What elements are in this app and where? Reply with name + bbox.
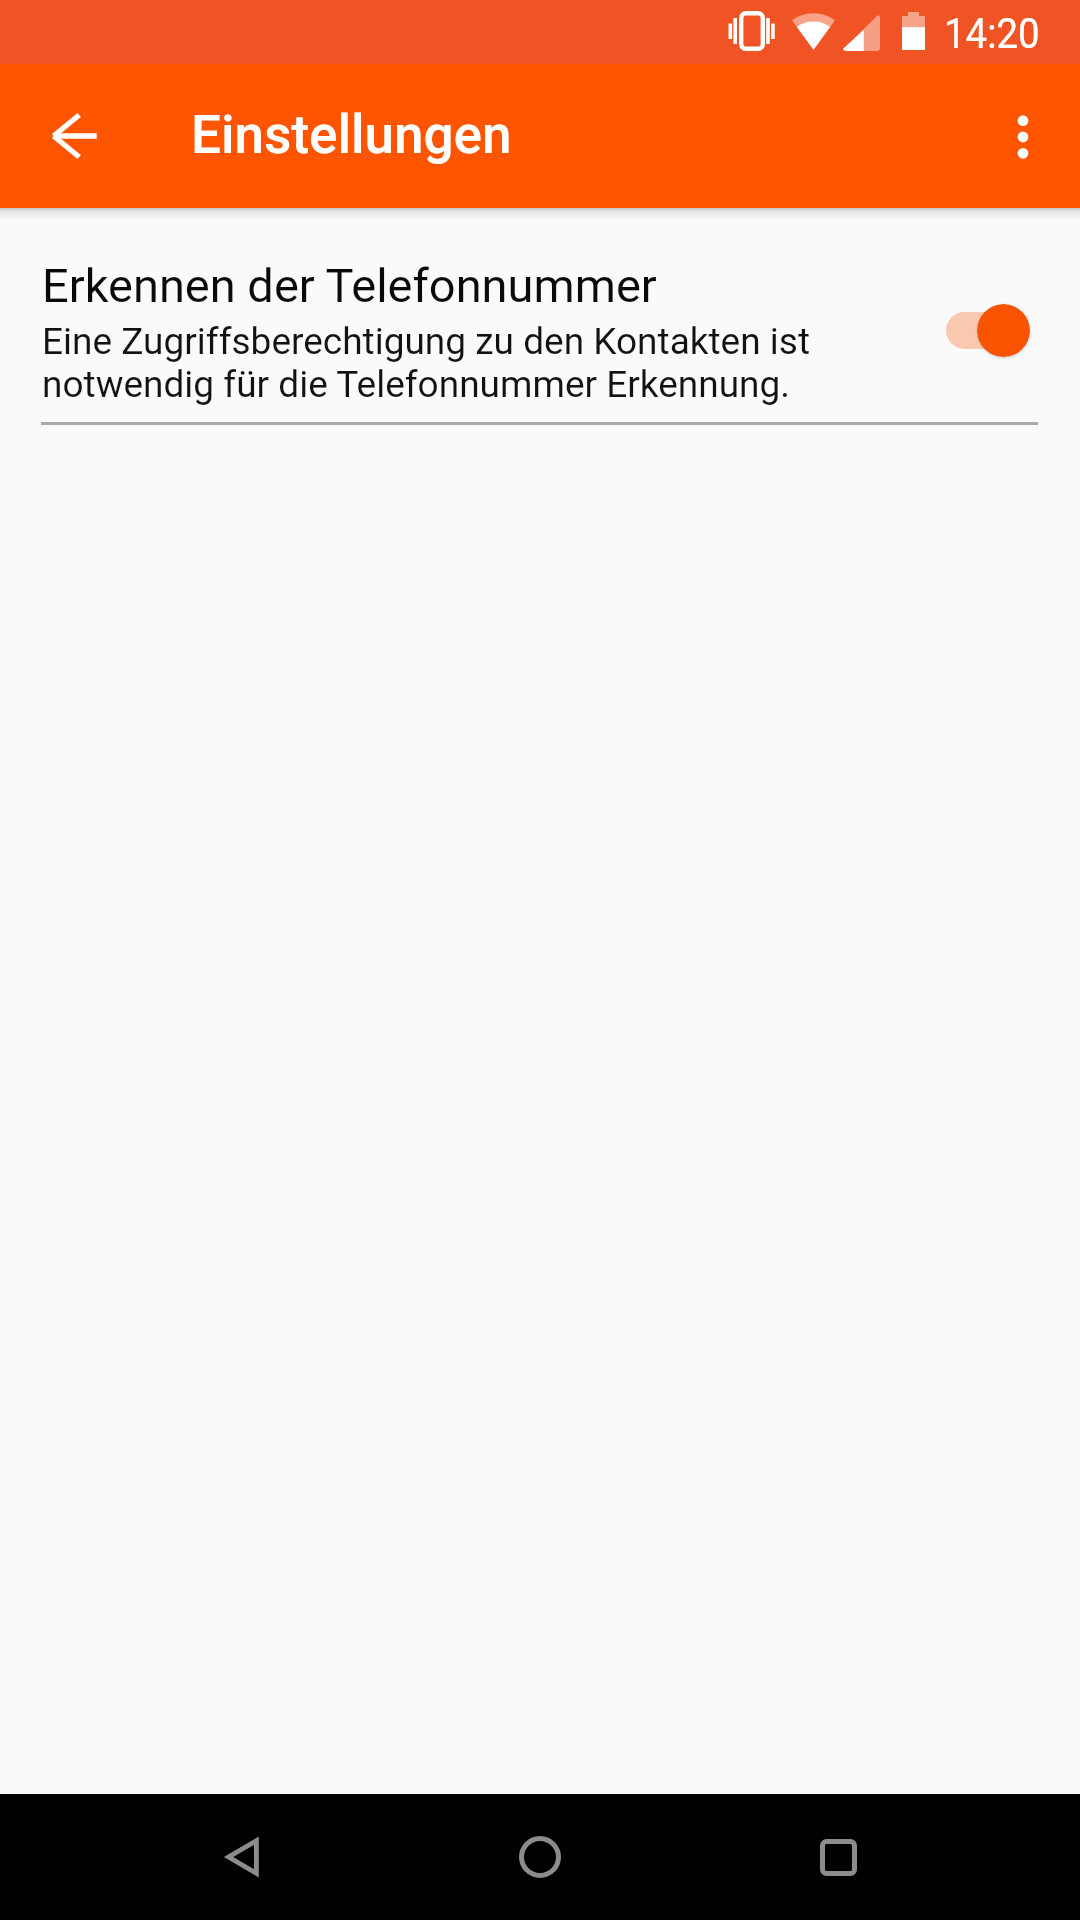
button[interactable]: More options bbox=[977, 90, 1069, 182]
staticText: 14:20 bbox=[944, 9, 1040, 58]
button[interactable]: Erkennen der Telefonnummer bbox=[0, 208, 1080, 434]
button[interactable]: Home bbox=[494, 1811, 586, 1903]
button[interactable]: Back bbox=[196, 1811, 288, 1903]
button[interactable]: Recents bbox=[792, 1811, 884, 1903]
staticText: Einstellungen bbox=[191, 104, 512, 166]
staticText: Erkennen der Telefonnummer bbox=[42, 258, 657, 313]
button[interactable]: Back bbox=[28, 90, 120, 182]
staticText: Eine Zugriffsberechtigung zu den Kontakt… bbox=[42, 320, 935, 406]
